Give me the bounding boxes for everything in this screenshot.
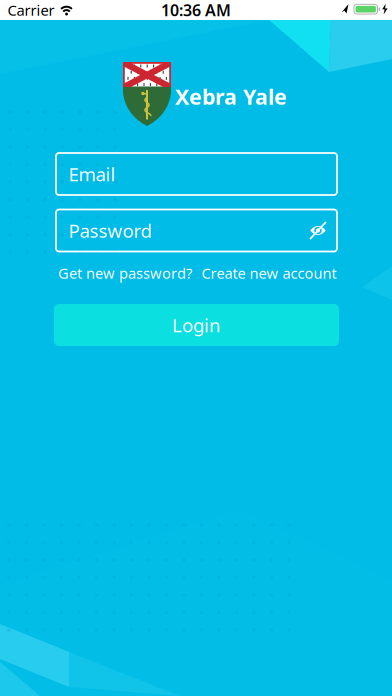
staticText: 10:36 AM [161,0,231,21]
button[interactable]: Password [56,209,337,251]
button[interactable]: Get new password? [58,263,192,283]
staticText: Login [172,313,221,337]
button[interactable]: Create new account [201,263,336,283]
staticText: Create new account [201,263,336,283]
button[interactable]: Login [54,304,339,346]
staticText: Email [68,162,115,186]
staticText: Xebra Yale [175,82,287,111]
staticText: Carrier [7,0,54,20]
button[interactable]: Show password [304,216,332,244]
button[interactable]: Email [56,153,337,195]
staticText: Password [68,218,151,243]
staticText: Get new password? [58,263,192,283]
